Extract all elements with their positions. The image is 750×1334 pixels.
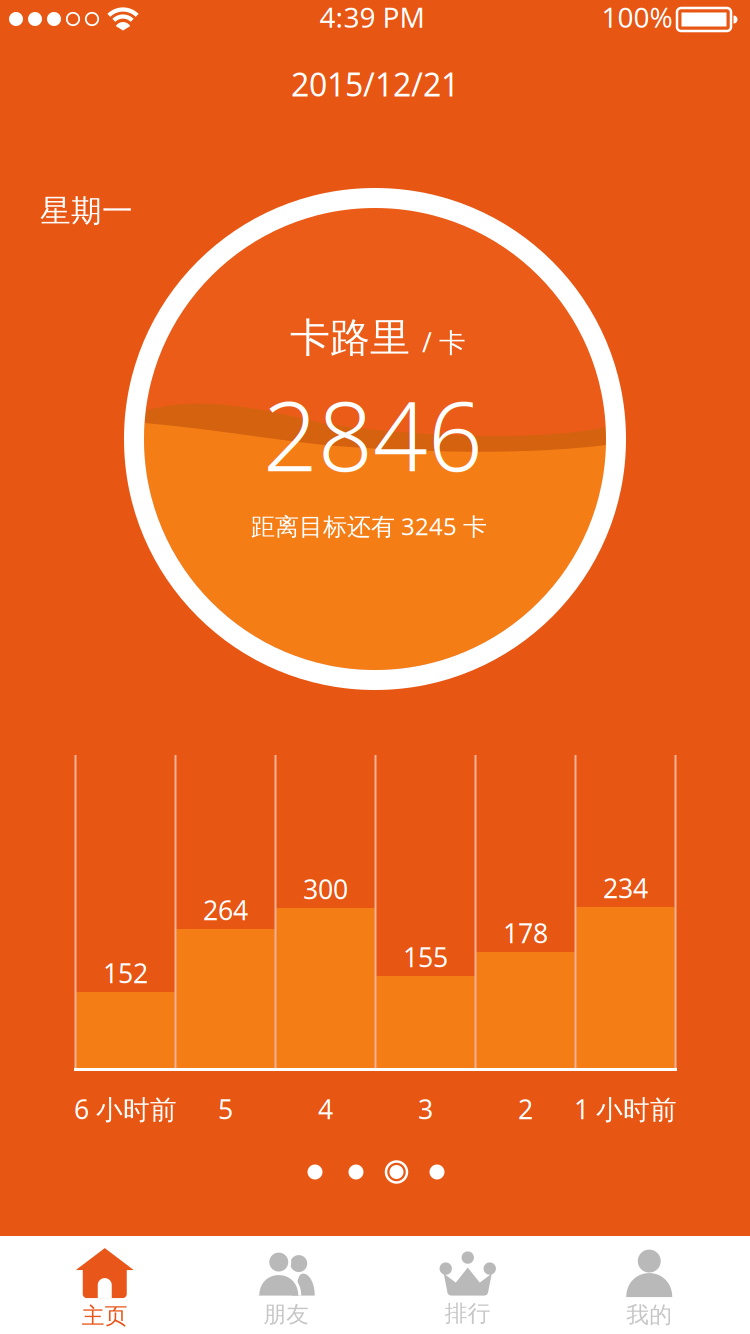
- staticText: / 卡: [422, 324, 466, 360]
- staticText: 264: [203, 892, 248, 928]
- staticText: 我的: [626, 1301, 672, 1329]
- staticText: 152: [103, 955, 148, 991]
- staticText: 4:39 PM: [319, 0, 424, 36]
- staticText: 100%: [601, 0, 672, 36]
- staticText: 1 小时前: [574, 1091, 677, 1127]
- staticText: 2: [518, 1091, 533, 1127]
- staticText: 4: [318, 1091, 333, 1127]
- staticText: 排行: [445, 1300, 491, 1327]
- staticText: 卡路里: [290, 313, 410, 362]
- staticText: 2015/12/21: [291, 63, 459, 105]
- staticText: 星期一: [40, 192, 133, 230]
- staticText: 300: [303, 871, 348, 907]
- staticText: 6 小时前: [74, 1091, 177, 1127]
- staticText: 朋友: [263, 1301, 309, 1328]
- staticText: 234: [603, 870, 648, 906]
- button[interactable]: 我的: [558, 1236, 740, 1334]
- button[interactable]: Page 3 of 4: [307, 1159, 452, 1185]
- staticText: 178: [503, 915, 548, 951]
- button[interactable]: 排行: [377, 1236, 558, 1334]
- staticText: 5: [218, 1091, 233, 1127]
- staticText: 3: [418, 1091, 433, 1127]
- button[interactable]: 朋友: [195, 1236, 377, 1334]
- staticText: 155: [403, 939, 448, 975]
- staticText: 主页: [82, 1302, 128, 1330]
- staticText: 2846: [263, 370, 483, 498]
- button[interactable]: 主页: [14, 1236, 195, 1334]
- staticText: 距离目标还有 3245 卡: [251, 510, 487, 542]
